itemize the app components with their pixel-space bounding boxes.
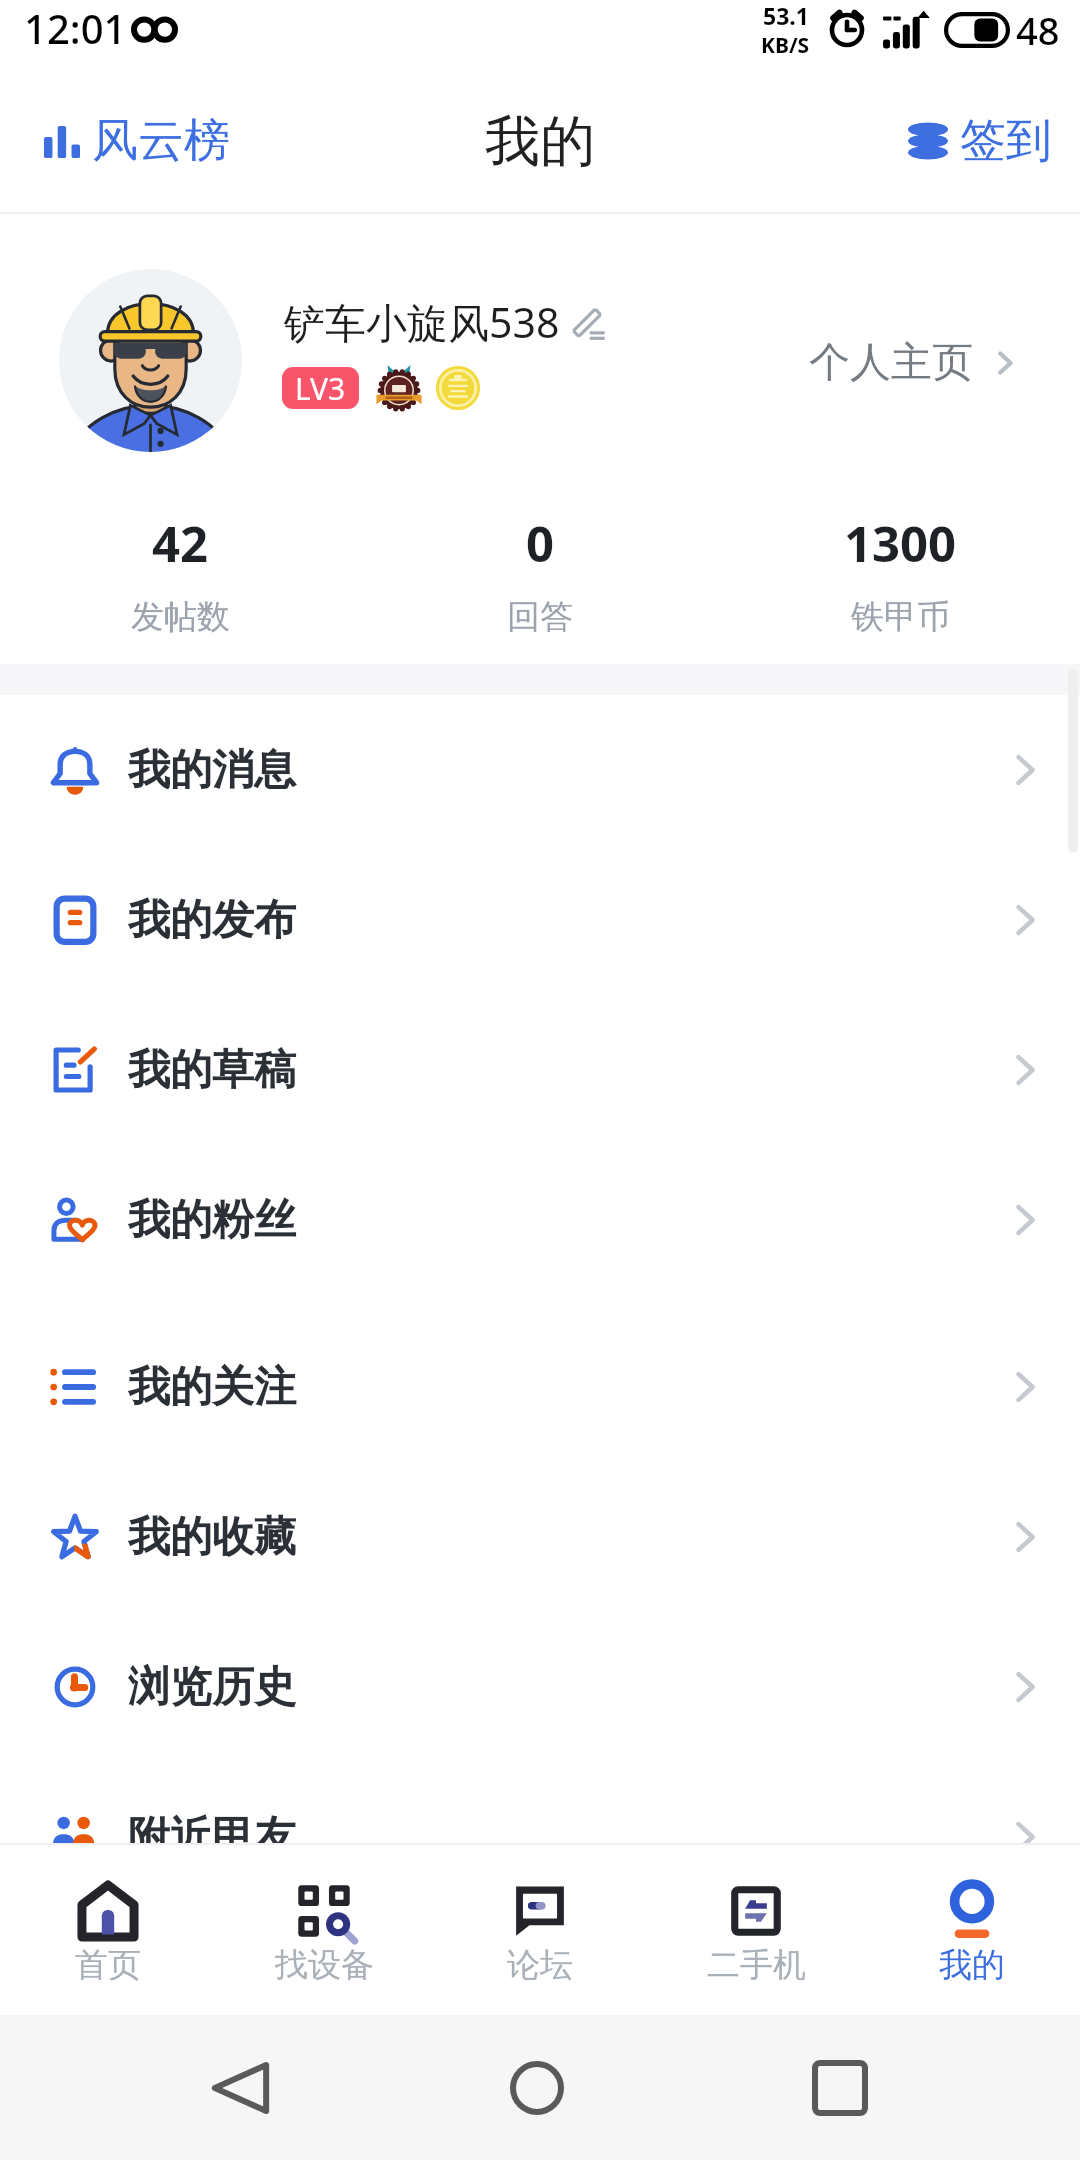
button[interactable]: Avatar — [59, 269, 242, 452]
button[interactable]: 我的消息 — [0, 695, 1080, 845]
button[interactable]: 浏览历史 — [0, 1612, 1080, 1762]
staticText: 我的消息 — [128, 744, 296, 797]
button[interactable]: 个人主页 — [783, 327, 1080, 399]
button[interactable]: 42 — [0, 504, 360, 644]
button[interactable]: 二手机 — [648, 1845, 864, 2015]
button[interactable]: 0 — [360, 504, 720, 644]
staticText: 回答 — [507, 596, 573, 638]
button[interactable]: Back — [190, 2060, 290, 2116]
button[interactable]: 1300 — [720, 504, 1080, 644]
button[interactable]: 我的 — [864, 1845, 1080, 2015]
button[interactable]: 我的收藏 — [0, 1462, 1080, 1612]
button[interactable]: 附近甲友 — [0, 1762, 1080, 1843]
staticText: 0 — [526, 510, 555, 577]
button[interactable]: 风云榜 — [0, 98, 244, 184]
staticText: 我的 — [485, 107, 595, 176]
staticText: 53.1 — [763, 0, 809, 31]
button[interactable]: Recents — [790, 2060, 890, 2116]
staticText: 我的 — [939, 1944, 1005, 1986]
staticText: 我的粉丝 — [128, 1194, 296, 1247]
button[interactable]: 签到 — [894, 98, 1080, 184]
staticText: 个人主页 — [809, 337, 973, 389]
staticText: 二手机 — [707, 1944, 806, 1986]
staticText: 我的草稿 — [128, 1044, 296, 1097]
staticText: 浏览历史 — [128, 1661, 296, 1714]
staticText: 48 — [1016, 4, 1060, 56]
staticText: 首页 — [75, 1944, 141, 1986]
staticText: LV3 — [295, 368, 346, 409]
staticText: 我的关注 — [128, 1361, 296, 1414]
button[interactable]: 我的关注 — [0, 1312, 1080, 1462]
button[interactable]: 我的草稿 — [0, 995, 1080, 1145]
button[interactable]: 找设备 — [216, 1845, 432, 2015]
button[interactable]: 论坛 — [432, 1845, 648, 2015]
staticText: 铲车小旋风538 — [284, 294, 560, 350]
staticText: 发帖数 — [131, 596, 230, 638]
staticText: 找设备 — [275, 1944, 374, 1986]
staticText: 42 — [152, 510, 209, 577]
button[interactable]: 我的发布 — [0, 845, 1080, 995]
staticText: 铁甲币 — [851, 596, 950, 638]
staticText: 签到 — [960, 112, 1052, 170]
button[interactable]: 首页 — [0, 1845, 216, 2015]
staticText: KB/S — [761, 31, 810, 60]
staticText: 附近甲友 — [128, 1811, 296, 1843]
button[interactable]: Edit nickname — [570, 300, 614, 344]
staticText: 1300 — [844, 510, 957, 577]
staticText: 风云榜 — [92, 112, 230, 170]
staticText: 我的发布 — [128, 894, 296, 947]
button[interactable]: 我的粉丝 — [0, 1145, 1080, 1295]
staticText: 12:01 — [24, 1, 127, 55]
staticText: 论坛 — [507, 1944, 573, 1986]
button[interactable]: Home — [487, 2060, 587, 2116]
staticText: 我的收藏 — [128, 1511, 296, 1564]
